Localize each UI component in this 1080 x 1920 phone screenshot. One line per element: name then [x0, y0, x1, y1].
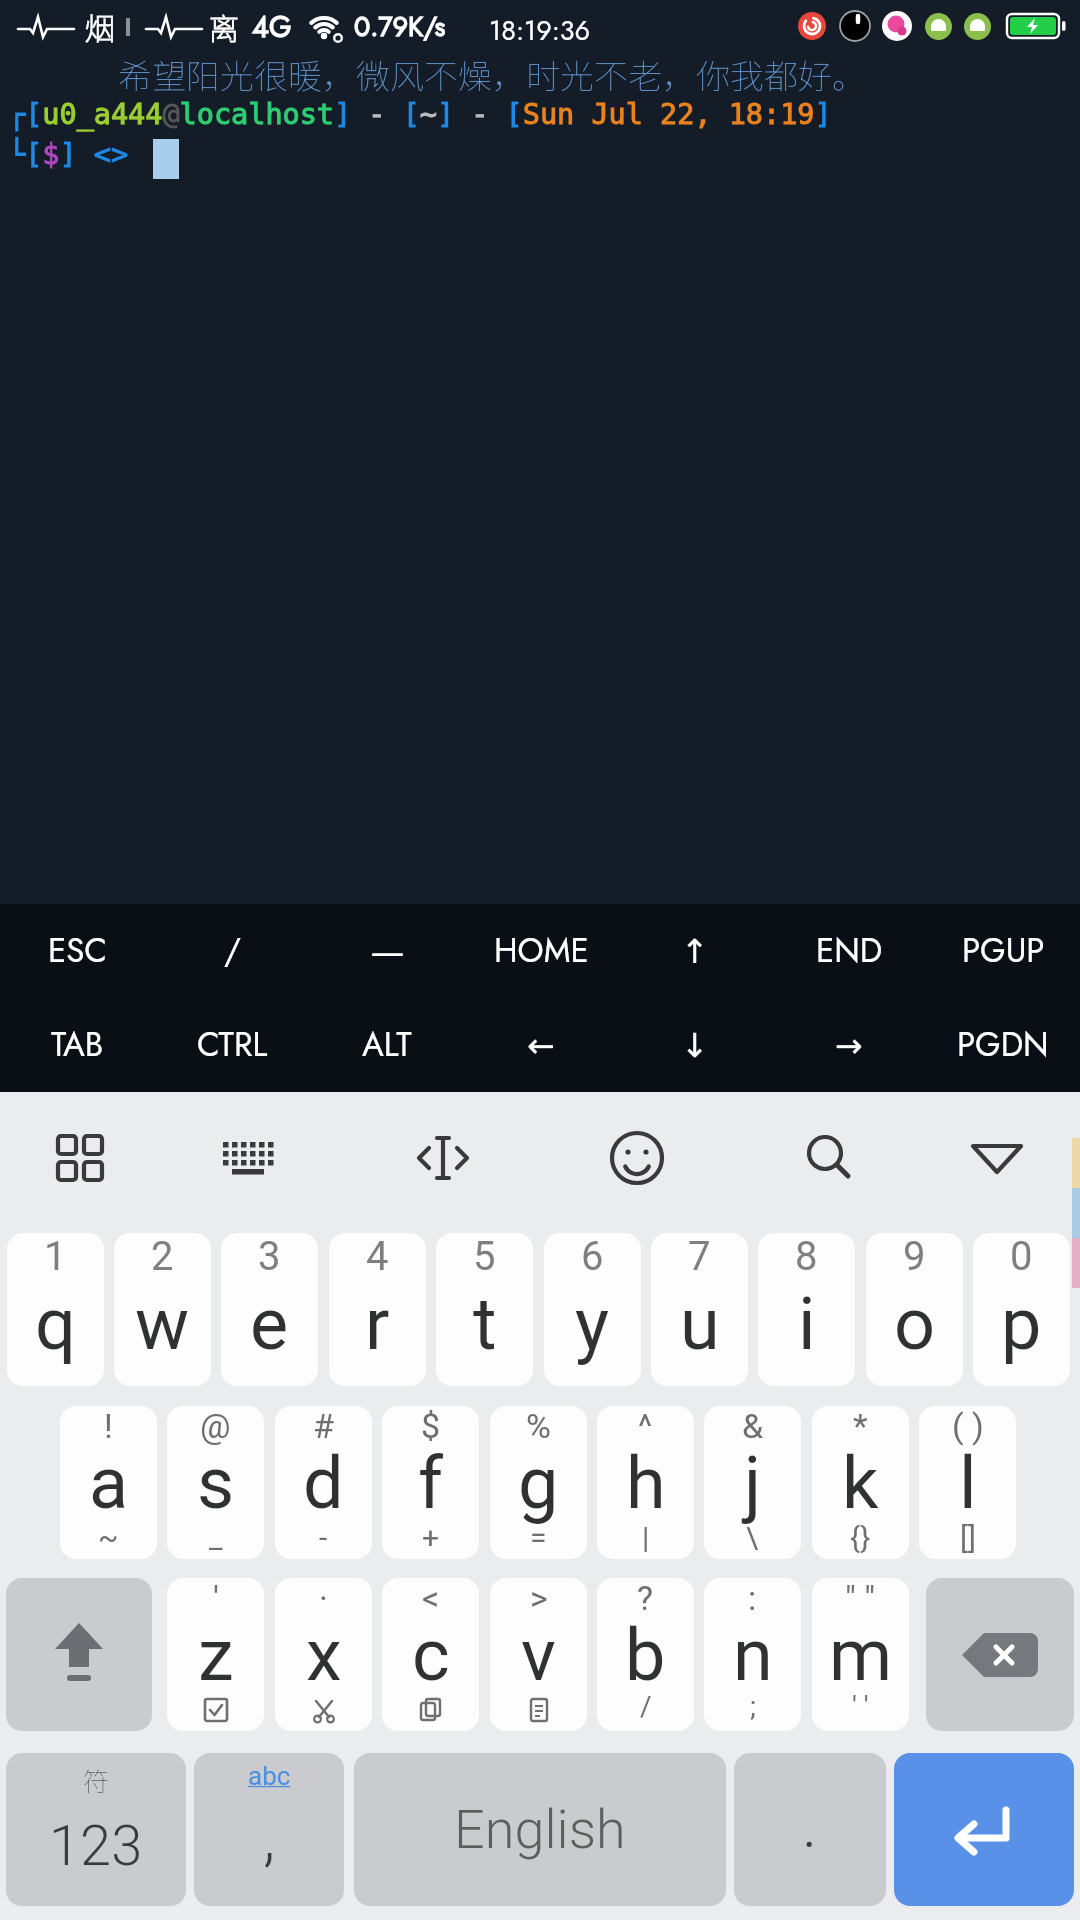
staticText: 2: [151, 1233, 174, 1280]
staticText: q: [35, 1282, 76, 1366]
button[interactable]: *: [812, 1406, 909, 1559]
staticText: " ": [845, 1578, 876, 1618]
button[interactable]: abc: [194, 1753, 344, 1906]
button[interactable]: ?: [597, 1578, 694, 1731]
button[interactable]: >: [490, 1578, 587, 1731]
button[interactable]: %: [490, 1406, 587, 1559]
staticText: $: [421, 1406, 441, 1446]
staticText: 0: [1010, 1233, 1033, 1280]
staticText: []: [960, 1520, 976, 1555]
staticText: u: [680, 1282, 720, 1366]
staticText: ?: [637, 1578, 654, 1618]
staticText: %: [526, 1406, 551, 1446]
staticText: abc: [248, 1761, 291, 1791]
staticText: o: [894, 1282, 936, 1366]
button[interactable]: @: [167, 1406, 264, 1559]
button[interactable]: [44, 1122, 116, 1194]
button[interactable]: English: [354, 1753, 726, 1906]
staticText: END: [816, 927, 883, 975]
staticText: ': [213, 1578, 219, 1618]
button[interactable]: 7: [651, 1233, 748, 1386]
staticText: ( ): [952, 1406, 984, 1446]
staticText: v: [521, 1613, 556, 1697]
staticText: _: [209, 1520, 223, 1555]
button[interactable]: 5: [436, 1233, 533, 1386]
staticText: ' ': [852, 1690, 869, 1723]
button[interactable]: [926, 1578, 1074, 1731]
button[interactable]: 6: [544, 1233, 641, 1386]
staticText: <: [422, 1578, 440, 1618]
staticText: e: [250, 1282, 289, 1366]
button[interactable]: [961, 1122, 1033, 1194]
button[interactable]: <: [382, 1578, 479, 1731]
button[interactable]: ↓: [618, 998, 772, 1092]
staticText: 4: [366, 1233, 389, 1280]
button[interactable]: →: [772, 998, 926, 1092]
button[interactable]: 2: [114, 1233, 211, 1386]
button[interactable]: 符: [6, 1753, 186, 1906]
button[interactable]: [601, 1122, 673, 1194]
button[interactable]: [894, 1753, 1074, 1906]
button[interactable]: 1: [7, 1233, 104, 1386]
staticText: 3: [258, 1233, 281, 1280]
button[interactable]: HOME: [464, 904, 618, 998]
staticText: *: [853, 1406, 868, 1446]
staticText: #: [313, 1406, 334, 1446]
button[interactable]: !: [60, 1406, 157, 1559]
button[interactable]: [407, 1122, 479, 1194]
button[interactable]: ·: [275, 1578, 372, 1731]
button[interactable]: PGUP: [926, 904, 1080, 998]
button[interactable]: [6, 1578, 152, 1731]
staticText: b: [625, 1613, 666, 1697]
staticText: -: [319, 1520, 328, 1555]
button[interactable]: 0: [973, 1233, 1070, 1386]
button[interactable]: 4: [329, 1233, 426, 1386]
staticText: h: [626, 1441, 666, 1525]
button[interactable]: /: [155, 904, 310, 998]
button[interactable]: " ": [812, 1578, 909, 1731]
staticText: 0.79K/s: [354, 7, 446, 46]
button[interactable]: ALT: [310, 998, 464, 1092]
button[interactable]: END: [772, 904, 926, 998]
staticText: 4G: [252, 6, 292, 48]
button[interactable]: ': [167, 1578, 264, 1731]
button[interactable]: [794, 1122, 866, 1194]
staticText: s: [197, 1441, 235, 1525]
button[interactable]: :: [704, 1578, 801, 1731]
staticText: a: [89, 1441, 129, 1525]
button[interactable]: ↑: [618, 904, 772, 998]
button[interactable]: CTRL: [155, 998, 310, 1092]
staticText: ;: [750, 1690, 756, 1723]
staticText: CTRL: [197, 1021, 268, 1069]
button[interactable]: 3: [221, 1233, 318, 1386]
button[interactable]: ←: [464, 998, 618, 1092]
staticText: w: [135, 1282, 190, 1366]
button[interactable]: ^: [597, 1406, 694, 1559]
button[interactable]: &: [704, 1406, 801, 1559]
button[interactable]: .: [734, 1753, 886, 1906]
staticText: k: [842, 1441, 879, 1525]
button[interactable]: 9: [866, 1233, 963, 1386]
button[interactable]: $: [382, 1406, 479, 1559]
staticText: j: [744, 1441, 762, 1525]
staticText: ESC: [48, 927, 107, 975]
staticText: ―: [371, 929, 404, 974]
button[interactable]: ( ): [919, 1406, 1016, 1559]
button[interactable]: #: [275, 1406, 372, 1559]
staticText: \: [746, 1520, 759, 1555]
button[interactable]: TAB: [0, 998, 155, 1092]
staticText: c: [412, 1613, 450, 1697]
staticText: .: [802, 1788, 818, 1863]
staticText: PGUP: [962, 927, 1045, 975]
staticText: l: [959, 1441, 977, 1525]
button[interactable]: ―: [310, 904, 464, 998]
staticText: 1: [44, 1233, 67, 1280]
button[interactable]: [212, 1122, 284, 1194]
staticText: 烟: [85, 5, 115, 48]
staticText: 符: [83, 1761, 110, 1799]
button[interactable]: ESC: [0, 904, 155, 998]
button[interactable]: 8: [758, 1233, 855, 1386]
staticText: TAB: [51, 1021, 104, 1069]
button[interactable]: PGDN: [926, 998, 1080, 1092]
staticText: ~: [98, 1520, 119, 1555]
